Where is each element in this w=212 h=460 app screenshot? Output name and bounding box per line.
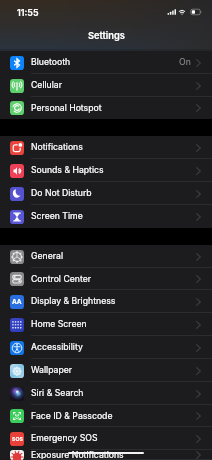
- button[interactable]: Screen Time: [0, 205, 212, 228]
- button[interactable]: Wallpaper: [0, 359, 212, 382]
- button[interactable]: General: [0, 245, 212, 268]
- button[interactable]: Sounds & Haptics: [0, 159, 212, 182]
- staticText: General: [31, 251, 63, 262]
- button[interactable]: Notifications: [0, 136, 212, 159]
- button[interactable]: Cellular: [0, 74, 212, 97]
- button[interactable]: Face ID & Passcode: [0, 405, 212, 427]
- button[interactable]: Exposure Notifications: [0, 450, 212, 460]
- staticText: Home Screen: [31, 319, 87, 330]
- staticText: Notifications: [31, 142, 83, 153]
- staticText: On: [179, 57, 191, 68]
- button[interactable]: Bluetooth: [0, 51, 212, 74]
- staticText: Display & Brightness: [31, 296, 116, 307]
- button[interactable]: SOS: [0, 427, 212, 450]
- staticText: AA: [12, 298, 22, 306]
- button[interactable]: Siri & Search: [0, 382, 212, 405]
- button[interactable]: Control Center: [0, 268, 212, 290]
- button[interactable]: AA: [0, 290, 212, 313]
- staticText: Personal Hotspot: [31, 103, 102, 114]
- staticText: Emergency SOS: [31, 433, 98, 444]
- other: Status icons: [167, 9, 202, 15]
- button[interactable]: Personal Hotspot: [0, 97, 212, 119]
- staticText: 11:55: [17, 7, 39, 18]
- staticText: Bluetooth: [31, 57, 71, 68]
- staticText: Cellular: [31, 80, 63, 91]
- staticText: Siri & Search: [31, 388, 84, 399]
- staticText: SOS: [12, 436, 23, 442]
- staticText: Do Not Disturb: [31, 188, 92, 199]
- staticText: Wallpaper: [31, 365, 73, 376]
- staticText: Settings: [88, 30, 125, 41]
- button[interactable]: Home Screen: [0, 313, 212, 336]
- staticText: Exposure Notifications: [31, 450, 124, 460]
- staticText: Face ID & Passcode: [31, 411, 113, 422]
- staticText: Sounds & Haptics: [31, 165, 104, 176]
- staticText: Control Center: [31, 274, 92, 285]
- staticText: Screen Time: [31, 211, 83, 222]
- button[interactable]: Do Not Disturb: [0, 182, 212, 205]
- button[interactable]: Accessibility: [0, 336, 212, 359]
- staticText: Accessibility: [31, 342, 83, 353]
